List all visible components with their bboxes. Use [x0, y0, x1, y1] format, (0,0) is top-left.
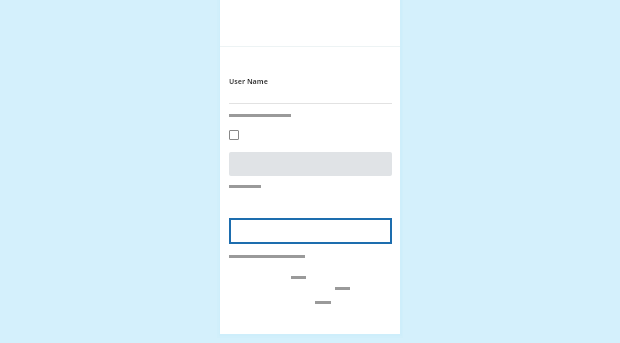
button[interactable]: Text input field: [229, 218, 392, 244]
button[interactable]: Checkbox: [229, 130, 239, 140]
button[interactable]: User Name: [229, 77, 268, 87]
